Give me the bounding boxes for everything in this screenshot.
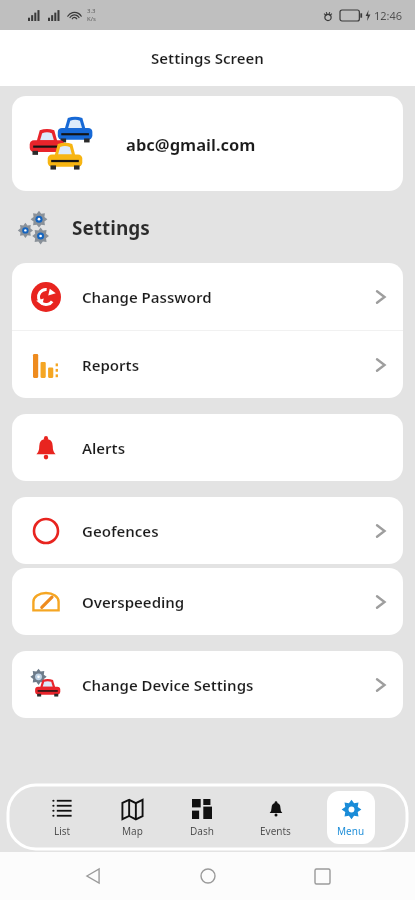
staticText: Settings xyxy=(72,215,150,241)
button[interactable]: Home xyxy=(186,854,230,898)
staticText: Alerts xyxy=(82,438,126,458)
staticText: Overspeeding xyxy=(82,592,185,612)
button[interactable]: Menu xyxy=(327,791,375,844)
button[interactable]: Overspeeding xyxy=(12,568,403,635)
staticText: Change Device Settings xyxy=(82,675,254,695)
button[interactable]: Change Device Settings xyxy=(12,651,403,718)
staticText: 3.3 xyxy=(87,7,96,15)
staticText: abc@gmail.com xyxy=(126,133,256,155)
staticText: Dash xyxy=(190,824,214,838)
staticText: Geofences xyxy=(82,521,159,541)
staticText: Reports xyxy=(82,355,140,375)
staticText: Settings Screen xyxy=(151,48,264,68)
staticText: Map xyxy=(122,824,143,838)
button[interactable]: Alerts xyxy=(12,414,403,481)
button[interactable]: Geofences xyxy=(12,497,403,564)
staticText: 12:46 xyxy=(374,8,403,23)
staticText: K/s xyxy=(87,15,96,23)
button[interactable]: Map xyxy=(110,791,154,844)
staticText: Change Password xyxy=(82,287,212,307)
button[interactable]: Reports xyxy=(12,331,403,398)
staticText: List xyxy=(54,824,71,838)
button[interactable]: Back xyxy=(71,854,115,898)
button[interactable]: Recents xyxy=(300,854,344,898)
staticText: Menu xyxy=(337,824,365,838)
button[interactable]: Events xyxy=(250,791,301,844)
button[interactable]: abc@gmail.com xyxy=(12,96,403,191)
button[interactable]: Change Password xyxy=(12,263,403,330)
staticText: Events xyxy=(260,824,291,838)
button[interactable]: List xyxy=(40,791,84,844)
button[interactable]: Dash xyxy=(180,791,224,844)
